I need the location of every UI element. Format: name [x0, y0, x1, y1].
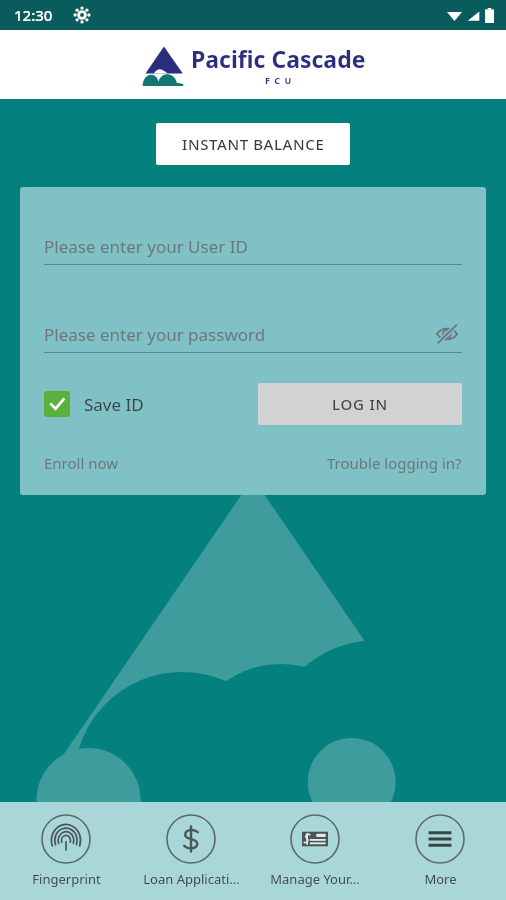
staticText: INSTANT BALANCE [182, 134, 325, 154]
button[interactable]: Loan Applicati... [132, 810, 250, 892]
staticText: Fingerprint [32, 870, 101, 888]
staticText: Trouble logging in? [327, 453, 462, 473]
button[interactable]: Please enter your User ID [44, 227, 462, 265]
button[interactable]: More [381, 810, 499, 892]
other: Manage Your... [290, 814, 340, 864]
staticText: 12:30 [14, 5, 53, 25]
staticText: Please enter your password [44, 323, 266, 346]
other: Fingerprint [41, 814, 91, 864]
staticText: Loan Applicati... [143, 870, 240, 888]
button[interactable]: Save ID [44, 391, 144, 417]
button[interactable]: Trouble logging in? [327, 453, 462, 473]
button[interactable]: Manage Your... [256, 810, 374, 892]
button[interactable]: Fingerprint [7, 810, 125, 892]
other: More [415, 814, 465, 864]
button[interactable]: LOG IN [258, 383, 462, 425]
button[interactable]: Enroll now [44, 453, 119, 473]
staticText: Enroll now [44, 453, 119, 473]
staticText: Manage Your... [270, 870, 360, 888]
staticText: Please enter your User ID [44, 235, 248, 258]
button[interactable]: INSTANT BALANCE [156, 123, 350, 165]
other: Loan Applicati... [166, 814, 216, 864]
staticText: Save ID [84, 393, 144, 416]
button[interactable]: Show password [432, 319, 462, 349]
button[interactable]: Please enter your password [44, 315, 462, 353]
staticText: LOG IN [332, 394, 389, 414]
staticText: More [424, 870, 457, 888]
staticText: F C U [265, 74, 293, 86]
staticText: Pacific Cascade [191, 43, 366, 74]
